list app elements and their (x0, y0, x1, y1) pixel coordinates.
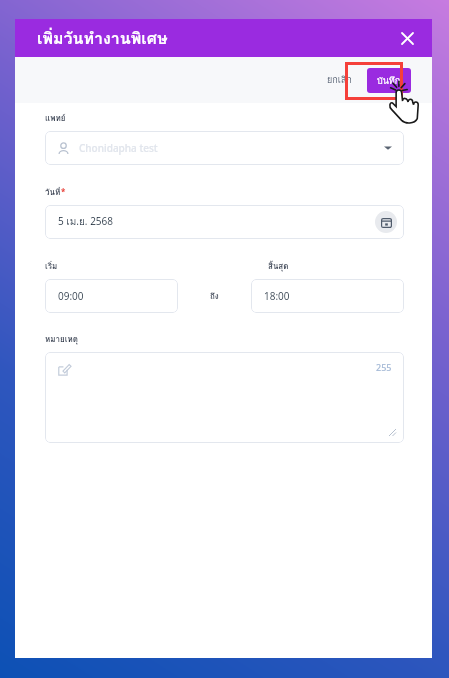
button[interactable]: ยกเลิก (319, 67, 360, 93)
staticText: 18:00 (264, 289, 290, 303)
staticText: หมายเหตุ (45, 333, 78, 346)
staticText: บันทึก (377, 74, 401, 88)
button[interactable]: Chonidapha test (45, 131, 404, 165)
staticText: ถึง (210, 290, 219, 303)
staticText: สิ้นสุด (268, 260, 289, 273)
staticText: เพิ่มวันทำงานพิเศษ (37, 26, 168, 51)
button[interactable]: บันทึก (367, 68, 411, 93)
staticText: 09:00 (58, 289, 84, 303)
staticText: ยกเลิก (327, 73, 352, 87)
button[interactable]: 18:00 (251, 279, 404, 313)
staticText: 5 เม.ย. 2568 (58, 214, 114, 230)
button[interactable]: Pick date (375, 211, 397, 233)
button[interactable]: Close (392, 23, 422, 53)
staticText: แพทย์ (45, 112, 66, 125)
staticText: 255 (376, 361, 392, 373)
staticText: Chonidapha test (79, 141, 158, 155)
staticText: * (61, 186, 66, 197)
button[interactable]: 5 เม.ย. 2568 (45, 205, 404, 239)
button[interactable]: 255 (45, 352, 404, 443)
button[interactable]: 09:00 (45, 279, 178, 313)
staticText: เริ่ม (45, 260, 58, 273)
staticText: วันที่ (45, 186, 61, 199)
